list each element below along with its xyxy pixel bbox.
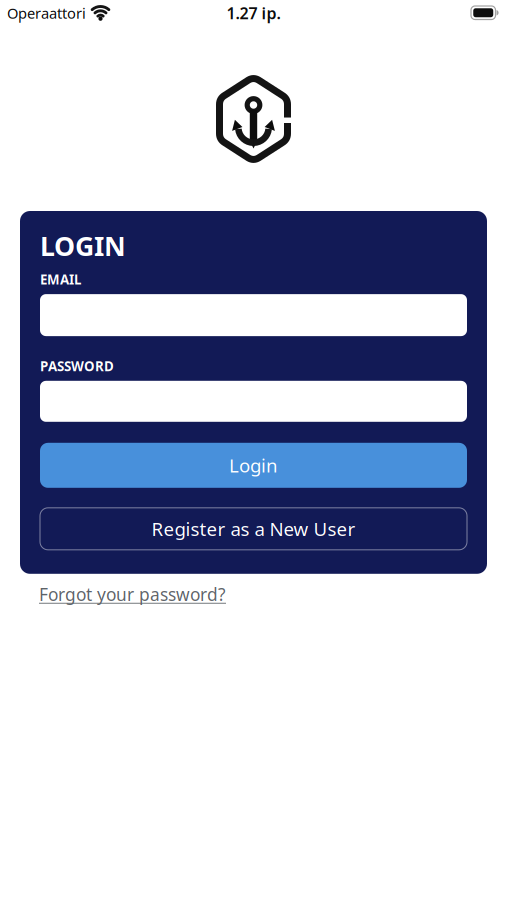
staticText: EMAIL <box>40 270 81 288</box>
staticText: 1.27 ip. <box>226 2 280 24</box>
staticText: Operaattori <box>7 3 86 23</box>
button[interactable]: Forgot your password? <box>39 583 226 606</box>
staticText: Register as a New User <box>151 516 355 541</box>
button[interactable]: Login <box>40 443 467 488</box>
staticText: PASSWORD <box>40 357 114 375</box>
staticText: LOGIN <box>40 228 126 263</box>
button[interactable]: Register as a New User <box>40 508 467 550</box>
staticText: Forgot your password? <box>39 583 226 606</box>
staticText: Login <box>229 453 278 478</box>
